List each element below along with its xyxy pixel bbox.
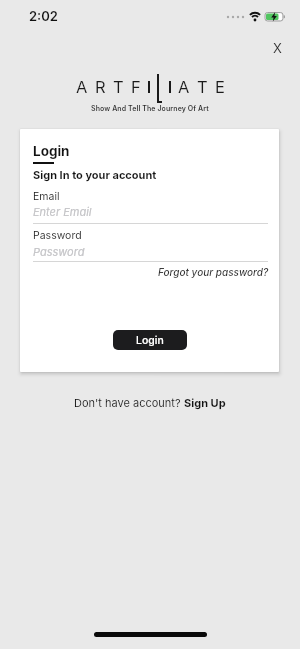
staticText: Login [33, 143, 70, 159]
staticText: R [95, 77, 106, 97]
staticText: Password [33, 229, 82, 242]
staticText: Enter Email [33, 205, 92, 218]
staticText: 2:02 [29, 8, 58, 24]
button[interactable]: Login [113, 330, 187, 350]
staticText: Email [33, 190, 60, 203]
button[interactable]: Forgot your password? [158, 266, 269, 278]
staticText: F [131, 77, 141, 97]
button[interactable]: X [266, 38, 288, 58]
staticText: T [197, 77, 208, 97]
staticText: Don't have account? [74, 396, 184, 409]
staticText: Login [136, 334, 164, 347]
staticText: E [215, 77, 225, 97]
staticText: A [76, 77, 88, 97]
staticText: Sign In to your account [33, 168, 157, 181]
staticText: Show And Tell The Journey Of Art [91, 104, 209, 112]
staticText: X [273, 40, 282, 56]
staticText: T [113, 77, 124, 97]
staticText: A [178, 77, 190, 97]
staticText: Password [33, 245, 85, 258]
button[interactable]: Sign Up [184, 396, 226, 409]
